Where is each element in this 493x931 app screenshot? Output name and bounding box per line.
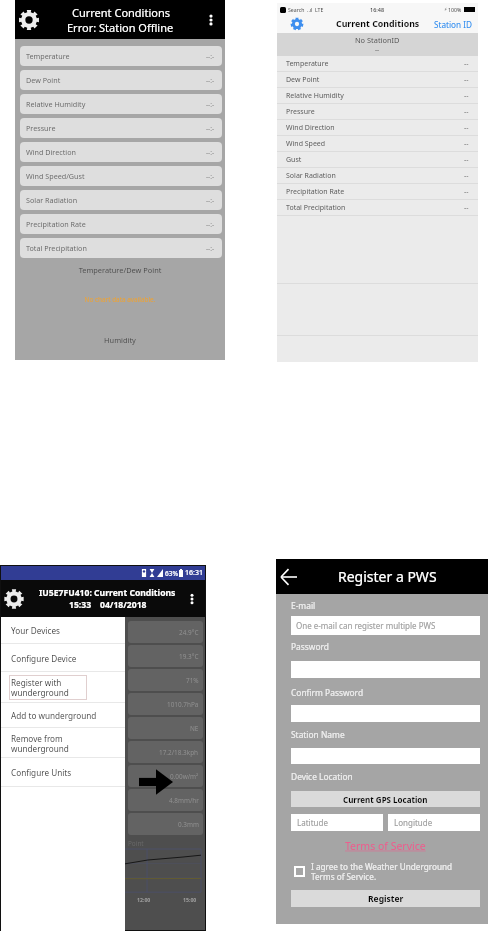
button[interactable]: Register: [291, 890, 480, 907]
button[interactable]: I agree to the Weather Underground Terms…: [291, 861, 480, 882]
staticText: No chart data available.: [15, 295, 225, 304]
staticText: Latitude: [297, 817, 328, 828]
button[interactable]: Dew Point: [277, 72, 478, 88]
staticText: 16:48: [370, 6, 385, 13]
button[interactable]: Longitude: [388, 814, 480, 831]
staticText: Terms of Service: [345, 839, 426, 853]
staticText: Error: Station Offline: [67, 20, 174, 35]
button[interactable]: More options: [184, 591, 200, 607]
button[interactable]: Wind Direction: [277, 120, 478, 136]
staticText: Temperature: [26, 51, 70, 61]
staticText: --: [464, 187, 469, 197]
staticText: --:-: [206, 220, 215, 229]
staticText: E-mail: [291, 600, 316, 611]
staticText: Total Precipitation: [286, 203, 346, 213]
staticText: Register with wunderground: [11, 677, 69, 698]
staticText: --:-: [206, 52, 215, 61]
button[interactable]: Add to wunderground: [1, 703, 125, 728]
staticText: Configure Units: [11, 767, 72, 778]
staticText: One e-mail can register multiple PWS: [296, 620, 436, 631]
staticText: --: [464, 91, 469, 101]
staticText: Current Conditions: [72, 5, 170, 20]
button[interactable]: Pressure: [277, 104, 478, 120]
staticText: IU5E7FU410: Current Conditions: [39, 587, 176, 599]
staticText: Station ID: [434, 19, 473, 30]
button[interactable]: Relative Humidity: [20, 94, 222, 114]
button[interactable]: Latitude: [291, 814, 383, 831]
staticText: 19.3°C: [179, 652, 199, 661]
staticText: 24.9°C: [179, 628, 199, 637]
button[interactable]: Configure Device: [1, 644, 125, 672]
button[interactable]: Relative Humidity: [277, 88, 478, 104]
staticText: Search: [288, 6, 305, 13]
button[interactable]: Dew Point: [20, 70, 222, 90]
staticText: Relative Humidity: [286, 91, 344, 101]
staticText: --: [464, 59, 469, 69]
button[interactable]: Total Precipitation: [277, 200, 478, 216]
staticText: Pressure: [26, 123, 56, 133]
staticText: I agree to the Weather Underground Terms…: [311, 861, 453, 882]
button[interactable]: Configure Units: [1, 758, 125, 787]
button[interactable]: Wind Speed/Gust: [20, 166, 222, 186]
staticText: ⚡: [444, 7, 448, 12]
staticText: --: [464, 75, 469, 85]
button[interactable]: Settings: [2, 587, 26, 611]
button[interactable]: Total Precipitation: [20, 238, 222, 258]
staticText: 100%: [448, 6, 462, 13]
staticText: 0.3mm: [178, 820, 199, 829]
staticText: --:-: [206, 148, 215, 157]
staticText: Wind Direction: [26, 147, 76, 157]
button[interactable]: Temperature: [20, 46, 222, 66]
button[interactable]: Register with wunderground: [1, 672, 125, 703]
button[interactable]: Wind Speed: [277, 136, 478, 152]
button[interactable]: Terms of Service: [291, 839, 480, 853]
staticText: Confirm Password: [291, 687, 364, 698]
button[interactable]: Precipitation Rate: [277, 184, 478, 200]
staticText: Remove from wunderground: [11, 733, 69, 754]
staticText: --:-: [206, 172, 215, 181]
staticText: Solar Radiation: [26, 195, 78, 205]
button[interactable]: Station ID: [434, 19, 473, 30]
staticText: --: [464, 171, 469, 181]
button[interactable]: Wind Direction: [20, 142, 222, 162]
staticText: --:-: [206, 244, 215, 253]
staticText: --: [464, 155, 469, 165]
staticText: --:-: [206, 76, 215, 85]
button[interactable]: Solar Radiation: [277, 168, 478, 184]
button[interactable]: Solar Radiation: [20, 190, 222, 210]
button[interactable]: Back: [281, 569, 297, 585]
button[interactable]: Temperature: [277, 56, 478, 72]
staticText: --:-: [206, 100, 215, 109]
staticText: NE: [190, 724, 199, 733]
button[interactable]: Settings: [289, 16, 305, 32]
staticText: Dew Point: [286, 75, 320, 85]
staticText: Configure Device: [11, 653, 77, 664]
staticText: Longitude: [394, 817, 433, 828]
button[interactable]: Current GPS Location: [291, 791, 480, 807]
staticText: Register a PWS: [338, 567, 437, 586]
button[interactable]: Your Devices: [1, 617, 125, 644]
button[interactable]: Precipitation Rate: [20, 214, 222, 234]
staticText: Wind Direction: [286, 123, 335, 133]
staticText: Dew Point: [26, 75, 61, 85]
staticText: --: [464, 123, 469, 133]
button[interactable]: One e-mail can register multiple PWS: [291, 616, 480, 635]
button[interactable]: More options: [202, 11, 220, 29]
staticText: Temperature: [286, 59, 329, 69]
staticText: Station Name: [291, 729, 345, 740]
staticText: 15:00: [183, 896, 197, 903]
staticText: 4.8mm/hr: [169, 796, 199, 805]
button[interactable]: Settings: [16, 7, 42, 33]
staticText: Your Devices: [11, 625, 60, 636]
staticText: ..ıl: [307, 6, 313, 13]
staticText: Current Conditions: [336, 18, 420, 30]
button[interactable]: Gust: [277, 152, 478, 168]
button[interactable]: Remove from wunderground: [1, 728, 125, 758]
staticText: Wind Speed: [286, 139, 326, 149]
button[interactable]: Pressure: [20, 118, 222, 138]
staticText: Solar Radiation: [286, 171, 336, 181]
staticText: Precipitation Rate: [26, 219, 86, 229]
